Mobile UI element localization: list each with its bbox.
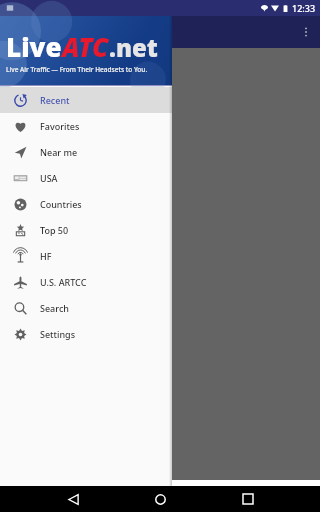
staticText: Top 50	[40, 224, 69, 236]
button[interactable]: Recents	[233, 486, 263, 512]
staticText: U.S. ARTCC	[40, 276, 87, 288]
button[interactable]: HF	[0, 243, 172, 269]
staticText: .net	[109, 31, 158, 64]
staticText: 12:33	[292, 2, 316, 14]
staticText: USA	[40, 172, 58, 184]
staticText: Near me	[40, 146, 78, 158]
button[interactable]: Top 50	[0, 217, 172, 243]
staticText: Favorites	[40, 120, 80, 132]
button[interactable]: Home	[145, 486, 175, 512]
button[interactable]: Recent	[0, 87, 172, 113]
staticText: Search	[40, 302, 69, 314]
staticText: HF	[40, 250, 52, 262]
button[interactable]: Near me	[0, 139, 172, 165]
button[interactable]: Back	[58, 486, 88, 512]
staticText: Countries	[40, 198, 82, 210]
button[interactable]: USA	[0, 165, 172, 191]
button[interactable]: Settings	[0, 321, 172, 347]
button[interactable]: More options	[294, 20, 318, 44]
staticText: Your recent stations will show here.	[120, 262, 237, 272]
button[interactable]: Favorites	[0, 113, 172, 139]
staticText: Recent	[40, 94, 70, 106]
staticText: Live Air Traffic — From Their Headsets t…	[6, 65, 148, 74]
button[interactable]: Countries	[0, 191, 172, 217]
staticText: Settings	[40, 328, 76, 340]
staticText: ATC	[62, 29, 109, 64]
staticText: Live	[6, 29, 62, 64]
button[interactable]: Search	[0, 295, 172, 321]
button[interactable]: U.S. ARTCC	[0, 269, 172, 295]
